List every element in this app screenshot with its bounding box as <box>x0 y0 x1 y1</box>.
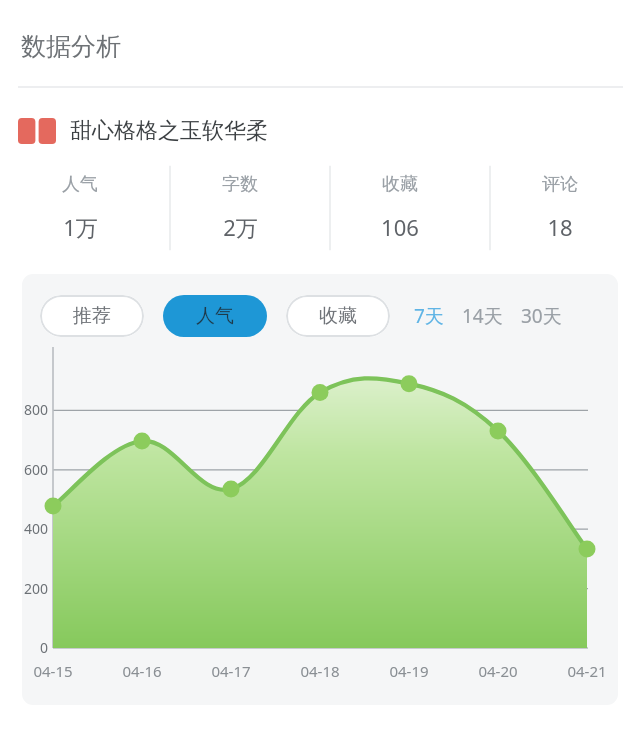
staticText: 字数 <box>222 173 258 196</box>
button[interactable]: 人气 <box>163 295 267 337</box>
staticText: 18 <box>547 212 573 242</box>
staticText: 04-19 <box>376 661 442 681</box>
button[interactable]: 收藏 <box>286 295 390 337</box>
button[interactable]: 评论 <box>480 161 640 242</box>
button[interactable]: 字数 <box>160 161 320 242</box>
button[interactable]: 推荐 <box>40 295 144 337</box>
staticText: 04-17 <box>198 661 264 681</box>
staticText: 04-18 <box>287 661 353 681</box>
staticText: 推荐 <box>73 304 111 328</box>
other: 人气趋势图表 <box>22 337 618 705</box>
staticText: 0 <box>22 638 48 657</box>
staticText: 04-20 <box>465 661 531 681</box>
staticText: 14天 <box>462 303 503 329</box>
staticText: 800 <box>22 400 48 419</box>
staticText: 2万 <box>223 212 258 242</box>
staticText: 04-21 <box>554 661 618 681</box>
staticText: 数据分析 <box>21 31 121 62</box>
staticText: 评论 <box>542 173 578 196</box>
staticText: 收藏 <box>382 173 418 196</box>
staticText: 收藏 <box>319 304 357 328</box>
staticText: 人气 <box>196 304 234 328</box>
button[interactable]: 30天 <box>519 297 564 335</box>
button[interactable]: 甜心格格之玉软华柔 <box>0 109 640 153</box>
button[interactable]: 收藏 <box>320 161 480 242</box>
button[interactable]: 人气 <box>0 161 160 242</box>
button[interactable]: 14天 <box>460 297 505 335</box>
staticText: 1万 <box>63 212 98 242</box>
button[interactable]: 7天 <box>412 297 446 335</box>
staticText: 30天 <box>521 303 562 329</box>
staticText: 400 <box>22 519 48 538</box>
staticText: 600 <box>22 460 48 479</box>
staticText: 甜心格格之玉软华柔 <box>70 117 268 145</box>
staticText: 人气 <box>62 173 98 196</box>
staticText: 200 <box>22 579 48 598</box>
staticText: 106 <box>381 212 419 242</box>
staticText: 04-16 <box>109 661 175 681</box>
staticText: 04-15 <box>22 661 86 681</box>
staticText: 7天 <box>414 303 444 329</box>
